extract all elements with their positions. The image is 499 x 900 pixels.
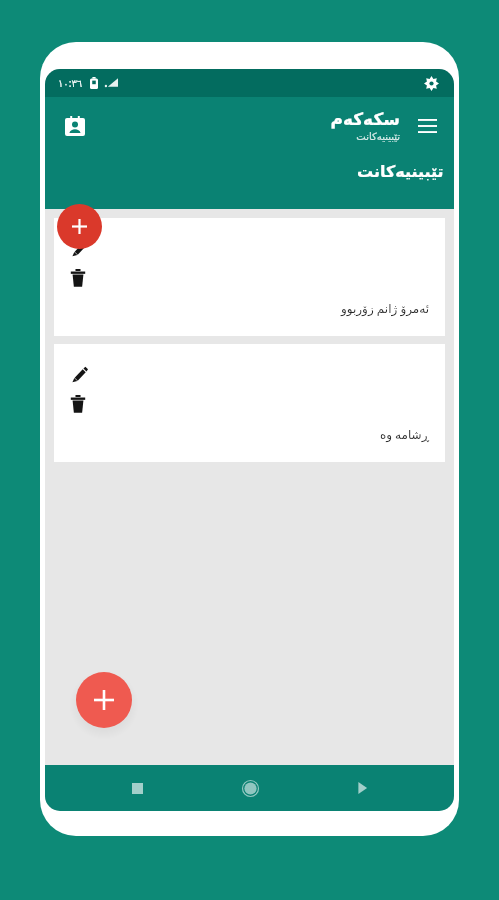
button[interactable]: Contacts — [55, 106, 95, 146]
button[interactable]: Add note — [76, 672, 132, 728]
staticText: سکەکەم — [330, 109, 400, 129]
button[interactable]: Edit — [54, 218, 445, 336]
button[interactable]: Edit — [69, 234, 95, 260]
button[interactable]: Delete — [69, 391, 95, 417]
staticText: تێبینیەکانت — [356, 131, 400, 143]
button[interactable]: Menu — [410, 109, 444, 143]
button[interactable]: Settings — [420, 72, 442, 94]
button[interactable]: Delete — [69, 265, 95, 291]
button[interactable]: Recents — [117, 768, 157, 808]
button[interactable]: Edit — [69, 360, 95, 386]
staticText: تێبینیەکانت — [357, 162, 444, 181]
button[interactable]: Add note — [57, 204, 102, 249]
staticText: ڕشامە وە — [379, 426, 429, 442]
staticText: ١٠:٣٦ — [58, 76, 83, 90]
button[interactable]: Home — [230, 768, 270, 808]
button[interactable]: Edit — [54, 344, 445, 462]
button[interactable]: Back — [342, 768, 382, 808]
staticText: ئەمرۆ ژانم زۆربوو — [340, 300, 429, 316]
